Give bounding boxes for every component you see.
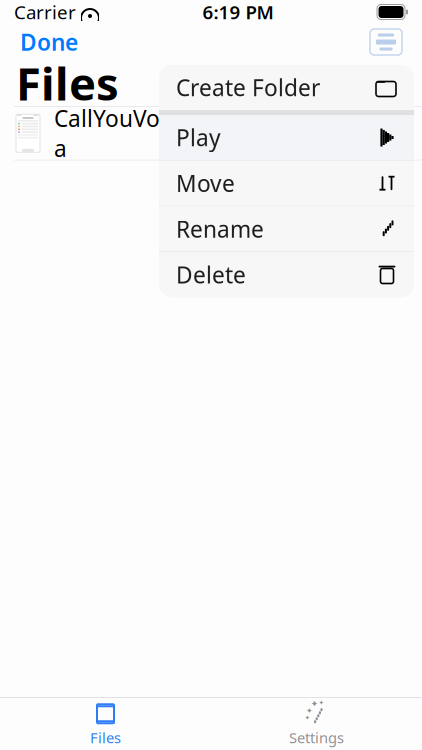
staticText: CallYouVoIP_recording_01.m4a	[54, 103, 372, 163]
staticText: Files	[16, 53, 119, 113]
staticText: ✦	[318, 699, 324, 707]
button[interactable]: ✦	[211, 699, 422, 749]
staticText: Carrier	[14, 0, 76, 24]
button[interactable]: Move	[159, 161, 414, 206]
staticText: Files	[90, 728, 121, 747]
staticText: Settings	[289, 728, 344, 747]
staticText: ✦	[306, 706, 313, 715]
button[interactable]: Create Folder	[159, 65, 414, 110]
button[interactable]: Delete	[159, 252, 414, 297]
button[interactable]: Details	[366, 29, 406, 55]
staticText: Move	[176, 168, 235, 198]
staticText: ✦	[304, 714, 310, 722]
staticText: 6:19 PM	[202, 0, 273, 24]
staticText: Rename	[176, 214, 264, 244]
staticText: ✦	[310, 698, 318, 709]
button[interactable]: Rename	[159, 206, 414, 251]
staticText: Play	[176, 122, 221, 152]
button[interactable]: Play	[159, 115, 414, 160]
button[interactable]: Done	[16, 21, 82, 63]
button[interactable]: Files	[0, 699, 211, 749]
staticText: Done	[20, 27, 78, 57]
staticText: Create Folder	[176, 72, 320, 102]
staticText: Delete	[176, 259, 246, 290]
button[interactable]: CallYouVoIP_recording_01.m4a	[0, 107, 422, 160]
